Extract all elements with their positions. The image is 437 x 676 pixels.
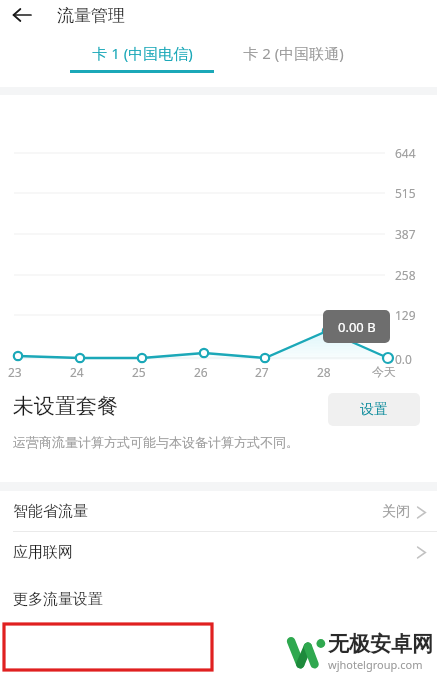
button[interactable]: 设置 <box>328 393 420 426</box>
staticText: 27 <box>255 364 269 380</box>
button[interactable]: 卡 2 (中国联通) <box>218 43 368 63</box>
staticText: 0.0 <box>395 351 412 367</box>
button[interactable]: Back <box>0 0 44 30</box>
button[interactable]: 智能省流量 <box>0 491 437 532</box>
staticText: 0.00 B <box>338 318 376 336</box>
staticText: 25 <box>132 364 146 380</box>
staticText: 应用联网 <box>13 543 73 562</box>
staticText: 26 <box>194 364 208 380</box>
staticText: 未设置套餐 <box>13 393 118 419</box>
staticText: 流量管理 <box>57 5 125 26</box>
staticText: 关闭 <box>382 503 410 521</box>
staticText: 387 <box>395 226 416 242</box>
staticText: 无极安卓网 <box>328 631 433 657</box>
staticText: 644 <box>395 145 416 161</box>
staticText: 卡 1 (中国电信) <box>92 43 193 63</box>
staticText: 智能省流量 <box>13 502 88 521</box>
button[interactable]: 更多流量设置 <box>0 573 437 625</box>
staticText: 129 <box>395 307 416 323</box>
button[interactable]: 应用联网 <box>0 532 437 573</box>
staticText: 今天 <box>372 364 396 379</box>
staticText: 设置 <box>360 401 388 419</box>
staticText: 更多流量设置 <box>13 590 103 609</box>
staticText: 515 <box>395 185 416 201</box>
staticText: 28 <box>317 364 331 380</box>
staticText: 258 <box>395 267 416 283</box>
staticText: 24 <box>70 364 84 380</box>
staticText: wjhotelgroup.com <box>328 657 423 672</box>
button[interactable]: 卡 1 (中国电信) <box>66 43 218 73</box>
staticText: 运营商流量计算方式可能与本设备计算方式不同。 <box>13 434 299 450</box>
staticText: 卡 2 (中国联通) <box>243 43 344 63</box>
staticText: 23 <box>8 364 22 380</box>
